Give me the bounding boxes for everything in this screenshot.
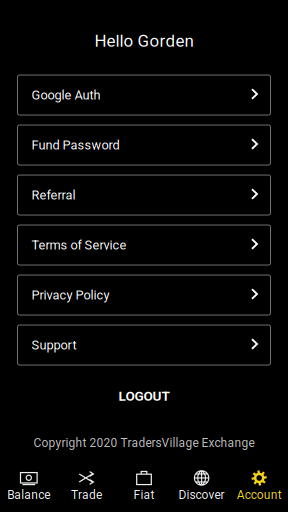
- button[interactable]: Fiat: [115, 464, 173, 508]
- button[interactable]: Support: [17, 325, 270, 365]
- staticText: Copyright 2020 TradersVillage Exchange: [33, 436, 254, 450]
- button[interactable]: Discover: [173, 464, 230, 508]
- button[interactable]: Account: [230, 464, 288, 508]
- staticText: Google Auth: [31, 87, 100, 102]
- button[interactable]: Google Auth: [17, 75, 270, 115]
- button[interactable]: Fund Password: [17, 125, 270, 165]
- staticText: Account: [237, 488, 282, 502]
- staticText: Privacy Policy: [31, 287, 109, 302]
- staticText: Terms of Service: [31, 237, 126, 252]
- staticText: Support: [31, 337, 76, 352]
- button[interactable]: Referral: [17, 175, 270, 215]
- staticText: Balance: [7, 488, 50, 502]
- staticText: Discover: [179, 488, 225, 502]
- staticText: Hello Gorden: [94, 31, 193, 51]
- staticText: Fund Password: [31, 137, 119, 152]
- button[interactable]: Terms of Service: [17, 225, 270, 265]
- button[interactable]: Privacy Policy: [17, 275, 270, 315]
- staticText: Referral: [31, 187, 75, 202]
- staticText: LOGOUT: [118, 388, 169, 404]
- button[interactable]: LOGOUT: [89, 386, 199, 406]
- staticText: Fiat: [133, 488, 154, 502]
- button[interactable]: Trade: [58, 464, 115, 508]
- button[interactable]: Balance: [0, 464, 58, 508]
- staticText: Trade: [71, 488, 102, 502]
